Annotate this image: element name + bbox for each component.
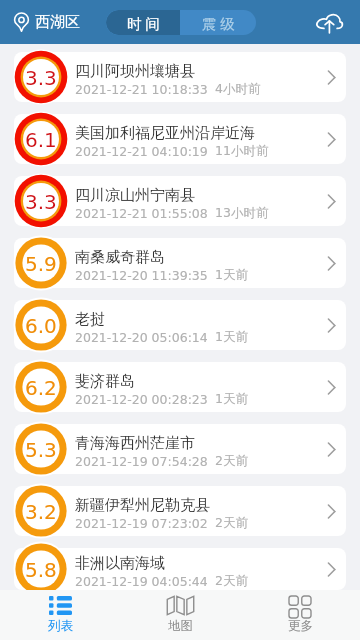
button[interactable]: 更多 xyxy=(240,590,360,640)
staticText: 2021-12-21 10:18:33 xyxy=(75,82,208,97)
staticText: 6.2 xyxy=(25,376,57,399)
staticText: 地图 xyxy=(168,618,193,634)
staticText: 青海海西州茫崖市 xyxy=(75,434,195,453)
staticText: 3.3 xyxy=(25,66,57,89)
staticText: 时 间 xyxy=(127,13,160,33)
button[interactable]: Upload xyxy=(314,7,344,37)
staticText: 震 级 xyxy=(202,13,235,33)
staticText: 更多 xyxy=(288,618,313,634)
button[interactable]: 青海海西州茫崖市 xyxy=(14,424,346,474)
staticText: 13小时前 xyxy=(215,205,269,221)
staticText: 南桑威奇群岛 xyxy=(75,248,165,267)
button[interactable]: 新疆伊犁州尼勒克县 xyxy=(14,486,346,536)
button[interactable]: 四川凉山州宁南县 xyxy=(14,176,346,226)
staticText: 3.2 xyxy=(25,500,57,523)
staticText: 老挝 xyxy=(75,310,105,329)
staticText: 5.3 xyxy=(25,438,57,461)
button[interactable]: 南桑威奇群岛 xyxy=(14,238,346,288)
staticText: 2021-12-21 01:55:08 xyxy=(75,206,208,221)
staticText: 新疆伊犁州尼勒克县 xyxy=(75,496,210,515)
staticText: 11小时前 xyxy=(215,143,269,159)
staticText: 2021-12-20 05:06:14 xyxy=(75,330,208,345)
staticText: 2021-12-20 00:28:23 xyxy=(75,392,208,407)
button[interactable]: 时 间 xyxy=(106,10,180,35)
staticText: 2天前 xyxy=(215,573,248,589)
staticText: 四川凉山州宁南县 xyxy=(75,186,195,205)
staticText: 非洲以南海域 xyxy=(75,554,165,573)
staticText: 四川阿坝州壤塘县 xyxy=(75,62,195,81)
staticText: 5.8 xyxy=(25,558,57,581)
button[interactable]: 西湖区 xyxy=(14,12,80,32)
staticText: 4小时前 xyxy=(215,81,261,97)
button[interactable]: 斐济群岛 xyxy=(14,362,346,412)
button[interactable]: 非洲以南海域 xyxy=(14,548,346,590)
staticText: 1天前 xyxy=(215,267,248,283)
staticText: 2021-12-21 04:10:19 xyxy=(75,144,208,159)
staticText: 5.9 xyxy=(25,252,57,275)
staticText: 2天前 xyxy=(215,515,248,531)
staticText: 6.0 xyxy=(25,314,57,337)
staticText: 西湖区 xyxy=(35,13,80,32)
button[interactable]: 老挝 xyxy=(14,300,346,350)
staticText: 6.1 xyxy=(25,128,57,151)
staticText: 列表 xyxy=(48,618,73,634)
button[interactable]: 四川阿坝州壤塘县 xyxy=(14,52,346,102)
button[interactable]: 美国加利福尼亚州沿岸近海 xyxy=(14,114,346,164)
button[interactable]: 地图 xyxy=(120,590,240,640)
staticText: 美国加利福尼亚州沿岸近海 xyxy=(75,124,255,143)
button[interactable]: 震 级 xyxy=(180,10,256,35)
staticText: 1天前 xyxy=(215,391,248,407)
button[interactable]: 列表 xyxy=(0,590,120,640)
staticText: 2021-12-19 07:54:28 xyxy=(75,454,208,469)
staticText: 斐济群岛 xyxy=(75,372,135,391)
staticText: 2021-12-19 04:05:44 xyxy=(75,574,208,589)
staticText: 2021-12-20 11:39:35 xyxy=(75,268,208,283)
staticText: 2天前 xyxy=(215,453,248,469)
staticText: 2021-12-19 07:23:02 xyxy=(75,516,208,531)
staticText: 1天前 xyxy=(215,329,248,345)
staticText: 3.3 xyxy=(25,190,57,213)
